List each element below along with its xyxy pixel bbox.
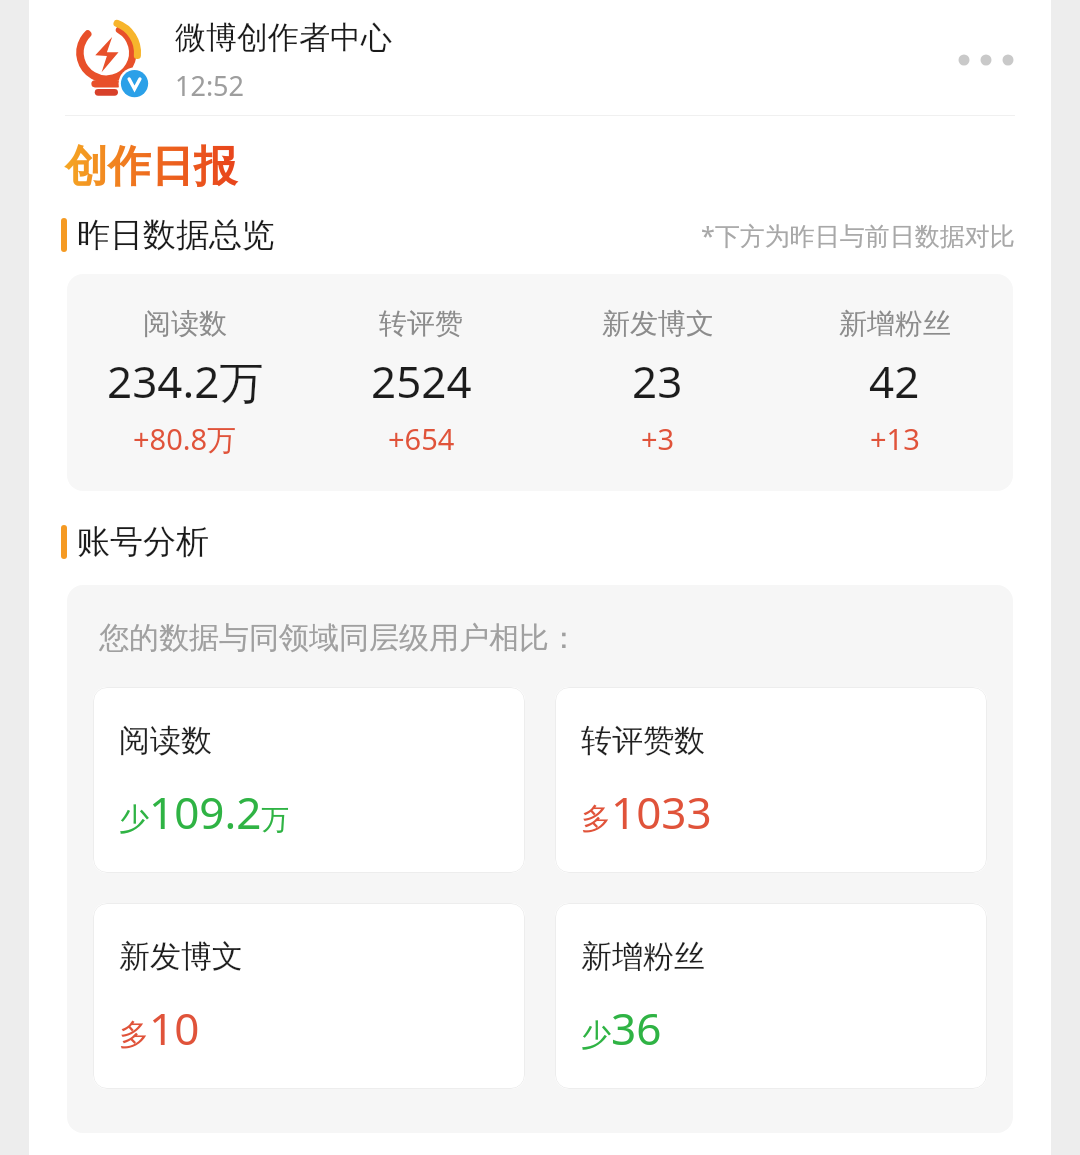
staticText: 阅读数 bbox=[119, 721, 212, 760]
staticText: 阅读数 bbox=[143, 306, 227, 341]
staticText: 转评赞 bbox=[379, 306, 463, 341]
staticText: 23 bbox=[632, 351, 683, 411]
staticText: 新增粉丝 bbox=[581, 937, 705, 976]
staticText: +13 bbox=[870, 419, 920, 458]
staticText: 2524 bbox=[371, 351, 472, 411]
button[interactable]: 阅读数 bbox=[93, 687, 525, 873]
staticText: 42 bbox=[869, 351, 920, 411]
staticText: 微博创作者中心 bbox=[175, 18, 392, 57]
staticText: *下方为昨日与前日数据对比 bbox=[701, 218, 1015, 252]
button[interactable]: 新发博文 bbox=[93, 903, 525, 1089]
staticText: 新增粉丝 bbox=[839, 306, 951, 341]
staticText: 少36 bbox=[581, 998, 662, 1058]
button[interactable]: 新增粉丝 bbox=[555, 903, 987, 1089]
staticText: 创作日报 bbox=[65, 140, 237, 194]
button[interactable]: More options bbox=[951, 40, 1021, 80]
staticText: +80.8万 bbox=[133, 419, 237, 459]
staticText: 多1033 bbox=[581, 782, 712, 842]
staticText: 新发博文 bbox=[602, 306, 714, 341]
staticText: 新发博文 bbox=[119, 937, 243, 976]
staticText: 234.2万 bbox=[107, 351, 264, 411]
staticText: 昨日数据总览 bbox=[77, 214, 275, 256]
button[interactable]: 转评赞数 bbox=[555, 687, 987, 873]
staticText: 账号分析 bbox=[77, 521, 209, 563]
button[interactable]: 阅读数 bbox=[67, 274, 1013, 491]
staticText: 少109.2万 bbox=[119, 782, 290, 842]
staticText: +3 bbox=[641, 419, 675, 458]
staticText: +654 bbox=[388, 419, 455, 458]
staticText: 多10 bbox=[119, 998, 200, 1058]
staticText: 转评赞数 bbox=[581, 721, 705, 760]
staticText: 您的数据与同领域同层级用户相比： bbox=[99, 619, 579, 657]
staticText: 12:52 bbox=[175, 67, 245, 104]
